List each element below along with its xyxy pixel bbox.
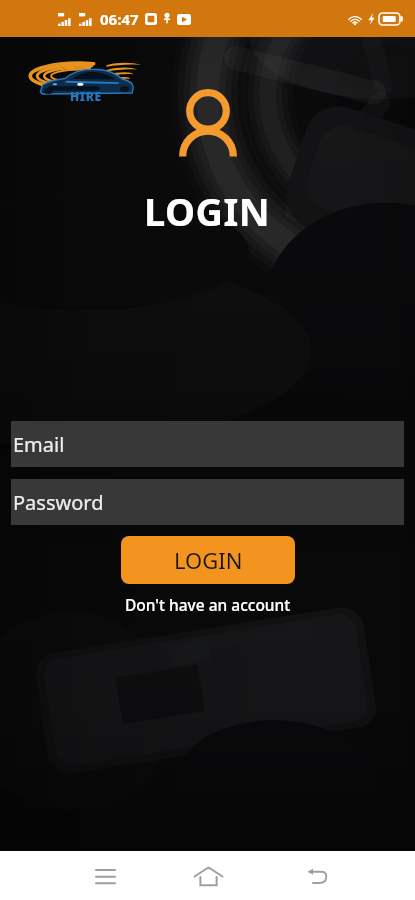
- button[interactable]: Password: [11, 479, 404, 525]
- staticText: LOGIN: [144, 185, 271, 237]
- button[interactable]: Recent apps: [82, 853, 128, 899]
- button[interactable]: Email: [11, 421, 404, 467]
- button[interactable]: Home: [185, 853, 231, 899]
- staticText: Password: [13, 489, 104, 516]
- staticText: LOGIN: [174, 545, 243, 575]
- button[interactable]: LOGIN: [121, 536, 295, 584]
- button[interactable]: Back: [294, 853, 340, 899]
- button[interactable]: Don't have an account: [117, 591, 299, 618]
- staticText: 06:47: [100, 9, 139, 29]
- staticText: HIRE: [70, 88, 102, 104]
- staticText: Don't have an account: [125, 594, 291, 615]
- staticText: Email: [13, 431, 65, 458]
